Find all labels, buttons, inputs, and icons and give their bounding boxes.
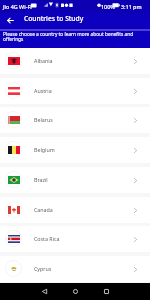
button[interactable]: Home [67, 283, 84, 300]
staticText: Countries to Study [24, 14, 84, 23]
button[interactable]: Back [36, 283, 53, 300]
staticText: 3:11 pm [121, 3, 142, 10]
staticText: Canada [34, 206, 53, 213]
button[interactable]: Costa Rica [0, 226, 150, 252]
staticText: Belgium [34, 146, 55, 153]
staticText: 100% [101, 3, 115, 10]
staticText: Costa Rica [34, 235, 60, 242]
button[interactable]: Brazil [0, 167, 150, 193]
button[interactable]: Recent apps [98, 283, 115, 300]
button[interactable]: Back [0, 10, 20, 26]
button[interactable]: Albania [0, 48, 150, 74]
staticText: Brazil [34, 176, 48, 183]
button[interactable]: Cyprus [0, 256, 150, 282]
button[interactable]: Belarus [0, 107, 150, 133]
staticText: Please choose a country to learn more ab… [3, 31, 140, 43]
button[interactable]: Austria [0, 78, 150, 104]
button[interactable]: Canada [0, 197, 150, 223]
staticText: Austria [34, 87, 52, 94]
button[interactable]: Belgium [0, 137, 150, 163]
staticText: Albania [34, 57, 53, 64]
staticText: Jio 4G Wi-Fi [3, 3, 32, 10]
staticText: Cyprus [34, 265, 52, 272]
staticText: Belarus [34, 116, 53, 123]
